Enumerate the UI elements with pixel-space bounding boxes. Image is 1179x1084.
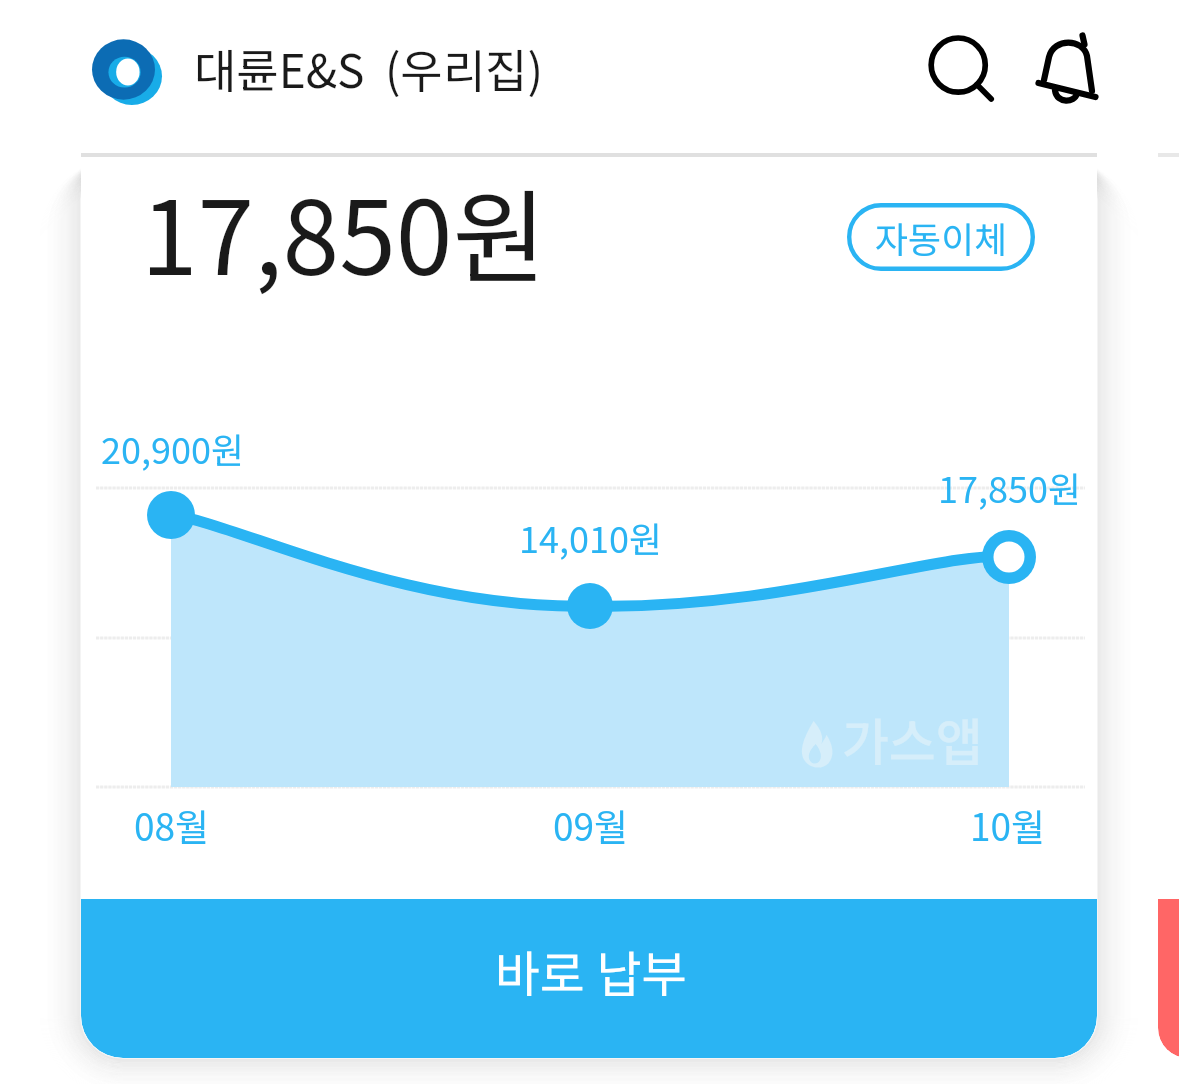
staticText: 바로 납부	[495, 935, 687, 1006]
staticText: 08월	[134, 798, 210, 852]
staticText: 17,850원	[141, 157, 547, 305]
staticText: 자동이체	[875, 211, 1008, 263]
staticText: 20,900원	[101, 422, 245, 474]
button[interactable]: Notifications	[1010, 7, 1134, 131]
button[interactable]: Search	[903, 9, 1027, 133]
button[interactable]: 자동이체	[847, 203, 1035, 271]
staticText: 대륜E&S (우리집)	[194, 35, 544, 102]
staticText: 09월	[553, 798, 629, 852]
button[interactable]: 바로 납부	[81, 899, 1097, 1058]
staticText: 14,010원	[519, 511, 663, 563]
staticText: 가스앱	[842, 702, 983, 776]
staticText: 17,850원	[938, 461, 1082, 513]
staticText: 10월	[970, 798, 1046, 852]
